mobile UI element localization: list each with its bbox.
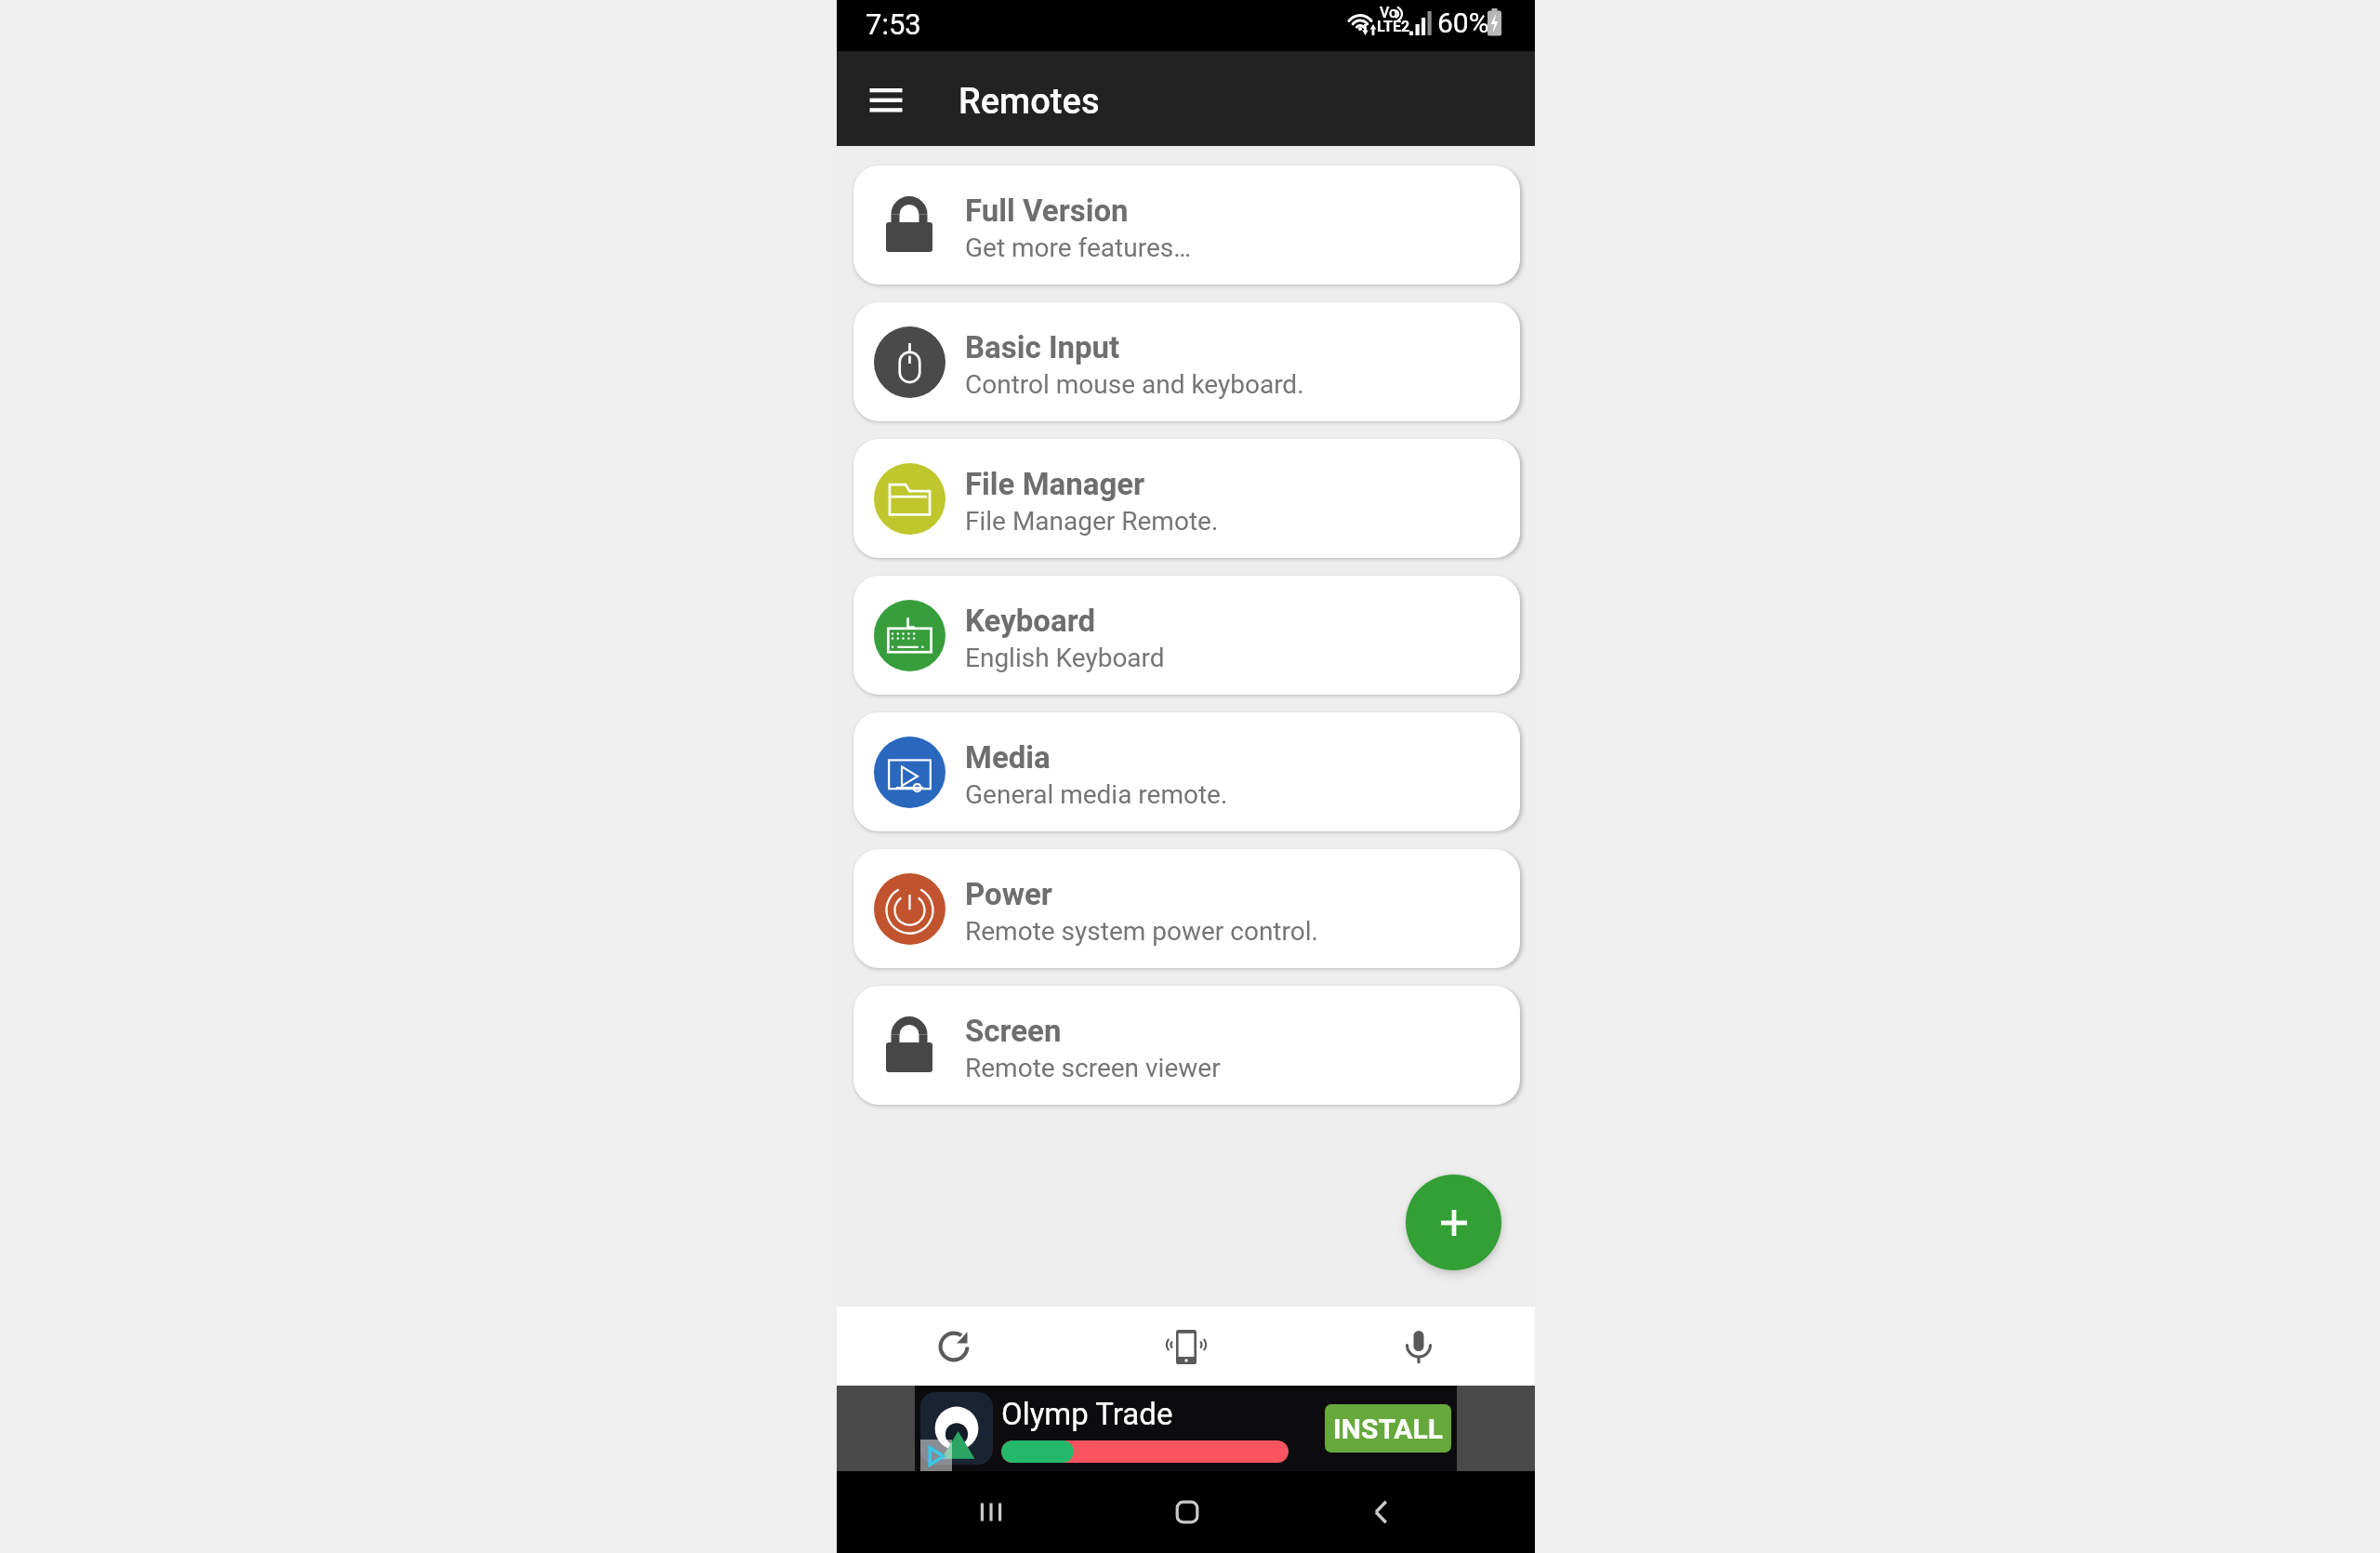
- button[interactable]: Keyboard: [853, 576, 1520, 695]
- staticText: File Manager Remote.: [965, 506, 1219, 537]
- button[interactable]: Back: [1352, 1471, 1411, 1553]
- staticText: Full Version: [965, 192, 1129, 229]
- button[interactable]: Olymp Trade: [915, 1386, 1457, 1471]
- staticText: Keyboard: [965, 603, 1096, 639]
- staticText: Screen: [965, 1013, 1062, 1049]
- button[interactable]: Home: [1157, 1471, 1217, 1553]
- staticText: File Manager: [965, 466, 1145, 502]
- staticText: Olymp Trade: [1001, 1396, 1173, 1432]
- staticText: INSTALL: [1333, 1413, 1443, 1445]
- staticText: English Keyboard: [965, 643, 1165, 673]
- staticText: 7:53: [866, 7, 921, 41]
- button[interactable]: Voice input: [1302, 1307, 1535, 1386]
- button[interactable]: Full Version: [853, 166, 1520, 285]
- staticText: Vo: [1380, 4, 1398, 21]
- staticText: 60%: [1437, 7, 1489, 39]
- staticText: Remotes: [959, 81, 1100, 123]
- button[interactable]: Vibrate: [1070, 1307, 1302, 1386]
- button[interactable]: Refresh: [837, 1307, 1070, 1386]
- staticText: Power: [965, 876, 1052, 912]
- button[interactable]: File Manager: [853, 439, 1520, 558]
- button[interactable]: Screen: [853, 986, 1520, 1105]
- staticText: General media remote.: [965, 779, 1228, 810]
- staticText: Control mouse and keyboard.: [965, 369, 1304, 400]
- button[interactable]: Add remote: [1406, 1175, 1501, 1270]
- button[interactable]: Media: [853, 712, 1520, 831]
- button[interactable]: INSTALL: [1325, 1404, 1451, 1453]
- staticText: Basic Input: [965, 329, 1120, 365]
- staticText: Get more features…: [965, 232, 1191, 263]
- button[interactable]: Power: [853, 849, 1520, 968]
- staticText: Media: [965, 739, 1051, 776]
- staticText: LTE2: [1377, 18, 1410, 35]
- staticText: Remote screen viewer: [965, 1053, 1221, 1083]
- staticText: Remote system power control.: [965, 916, 1318, 947]
- button[interactable]: Open navigation menu: [853, 66, 919, 131]
- button[interactable]: Recent apps: [961, 1471, 1021, 1553]
- button[interactable]: Basic Input: [853, 302, 1520, 421]
